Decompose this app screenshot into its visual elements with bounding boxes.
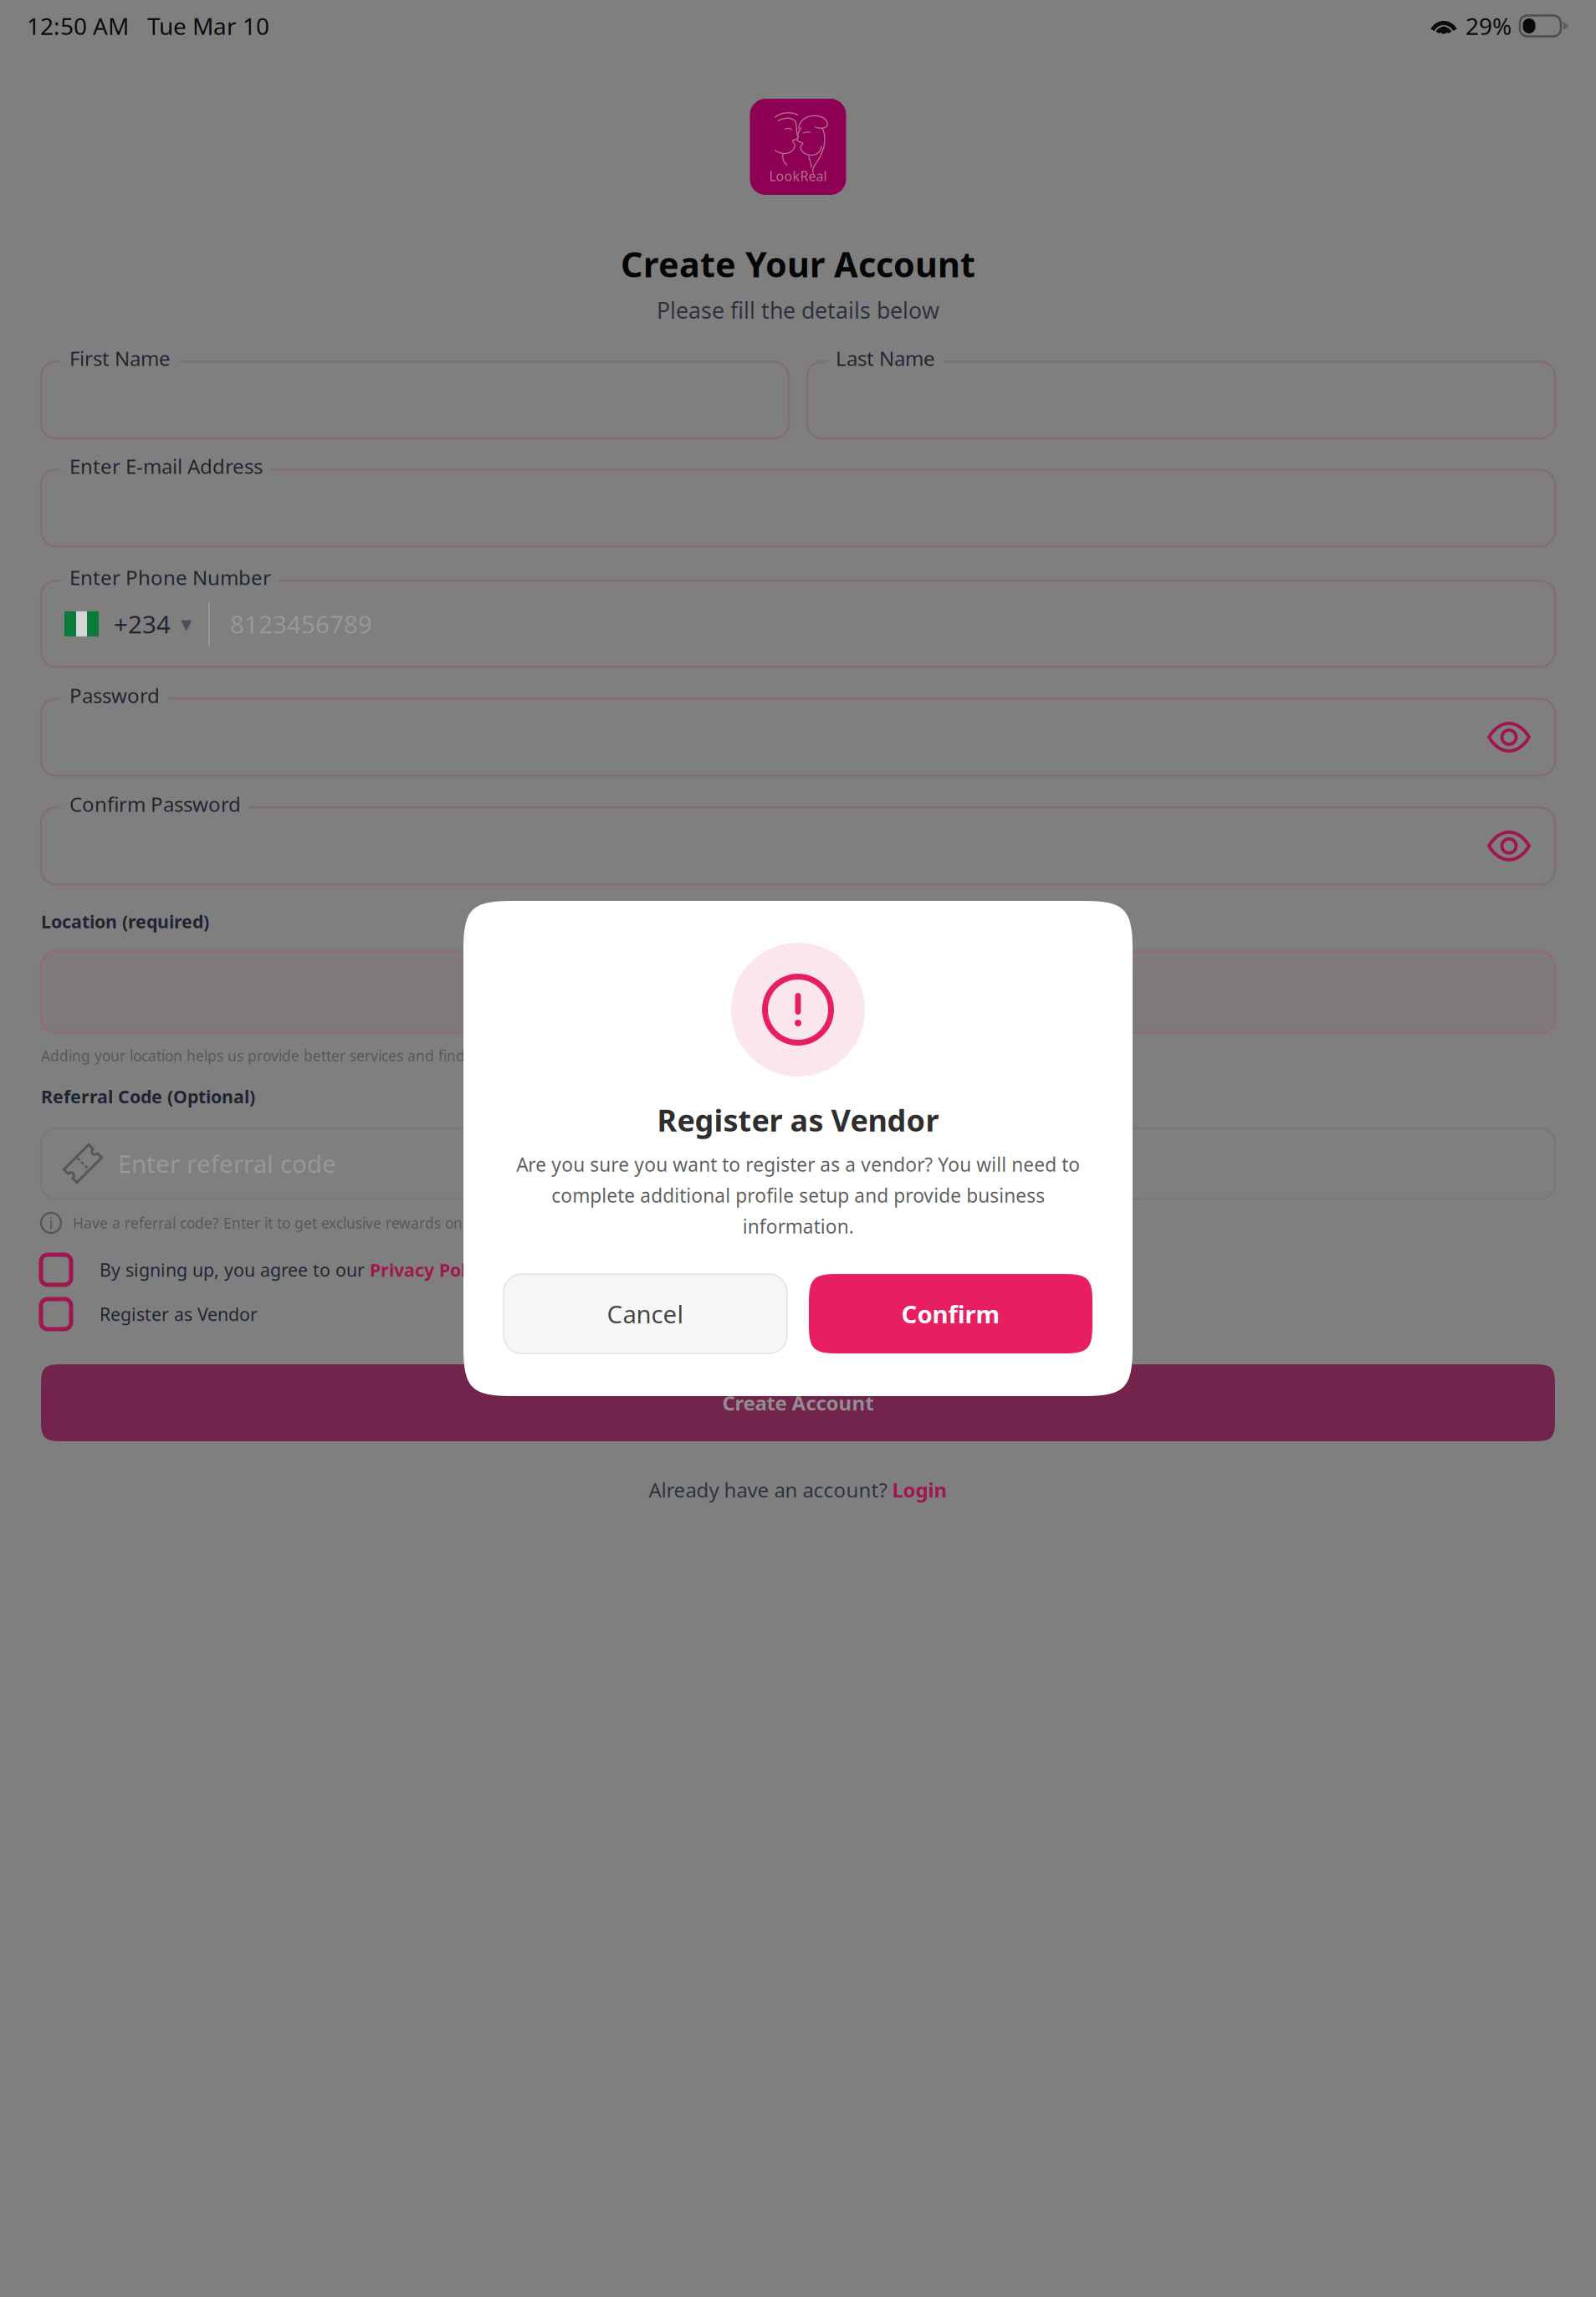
button[interactable]: Cancel	[504, 1274, 787, 1353]
staticText: i	[49, 1212, 53, 1234]
staticText: ▾	[181, 611, 192, 637]
staticText: Tue Mar 10	[147, 10, 269, 41]
staticText: Already have an account?	[649, 1476, 892, 1503]
staticText: Login	[892, 1476, 947, 1503]
staticText: LookReal	[769, 167, 827, 185]
staticText: By signing up, you agree to our	[100, 1258, 370, 1282]
staticText: 8123456789	[230, 608, 372, 640]
staticText: Enter E-mail Address	[69, 453, 263, 479]
staticText: Privacy Policy	[370, 1258, 490, 1282]
staticText: Cancel	[607, 1297, 684, 1330]
staticText: Create Account	[722, 1389, 874, 1416]
staticText: Are you sure you want to register as a v…	[516, 1152, 1080, 1239]
staticText: First Name	[69, 345, 171, 372]
staticText: Register as Vendor	[100, 1302, 258, 1326]
staticText: Enter referral code	[118, 1147, 336, 1180]
staticText: Enter Phone Number	[69, 564, 271, 591]
staticText: Create Your Account	[621, 241, 975, 287]
staticText: 12:50 AM	[27, 10, 129, 41]
staticText: Terms	[532, 1258, 587, 1282]
staticText: Confirm	[901, 1297, 1000, 1330]
button[interactable]: Confirm	[809, 1274, 1092, 1353]
staticText: Confirm Password	[69, 791, 241, 817]
staticText: Register as Vendor	[657, 1100, 939, 1140]
button[interactable]: Create Account	[41, 1364, 1555, 1441]
staticText: +234	[114, 608, 171, 640]
button[interactable]: Already have an account?	[649, 1476, 947, 1503]
staticText: Have a referral code? Enter it to get ex…	[73, 1213, 518, 1233]
staticText: 29%	[1466, 10, 1512, 41]
staticText: Password	[69, 682, 160, 709]
button[interactable]: By signing up, you agree to our	[41, 1251, 1555, 1288]
staticText: Referral Code (Optional)	[41, 1085, 255, 1108]
button[interactable]: Register as Vendor	[41, 1296, 1555, 1333]
staticText: Last Name	[836, 345, 935, 372]
staticText: Location (required)	[41, 910, 209, 933]
staticText: and	[490, 1258, 532, 1282]
staticText: Adding your location helps us provide be…	[41, 1046, 576, 1065]
staticText: Please fill the details below	[657, 295, 939, 325]
